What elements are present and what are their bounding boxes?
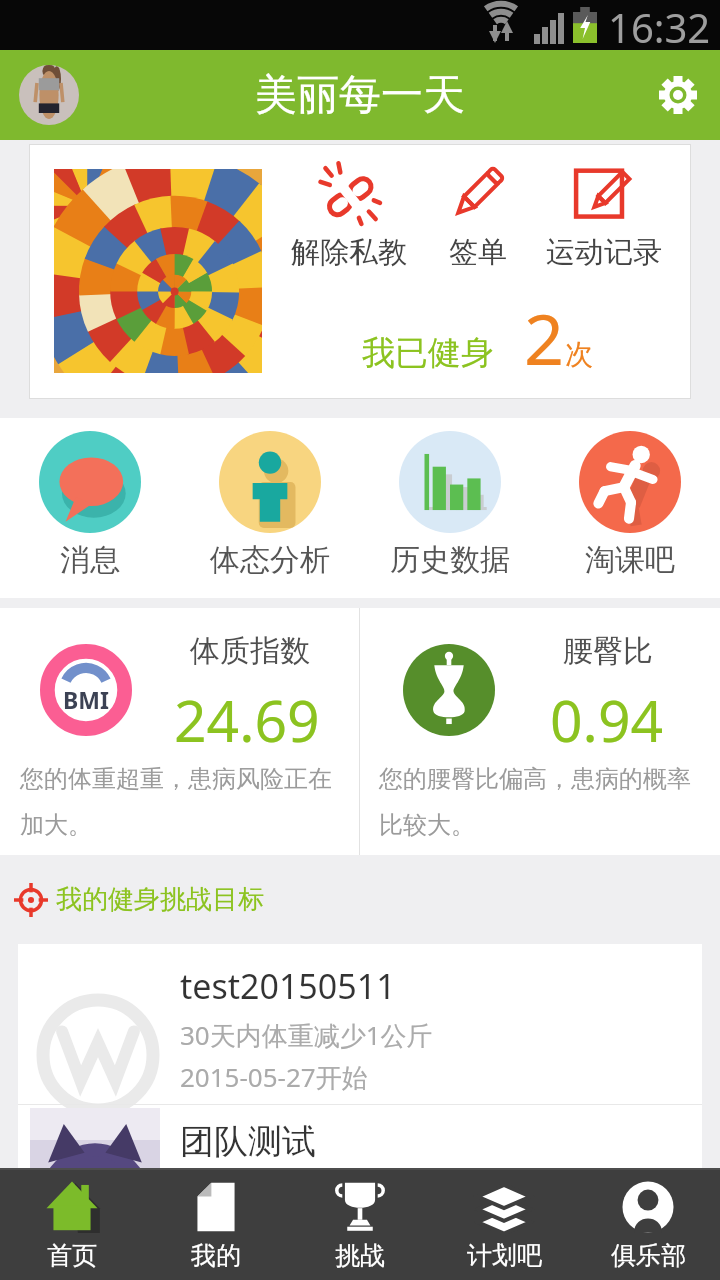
staticText: test20150511 (180, 963, 396, 1009)
button[interactable]: 解除私教 (285, 162, 413, 271)
staticText: 我的健身挑战目标 (56, 883, 264, 916)
staticText: 历史数据 (390, 541, 510, 579)
staticText: BMI (40, 684, 132, 715)
button[interactable]: 签单 (414, 162, 542, 271)
button[interactable]: 俱乐部 (576, 1170, 720, 1280)
button[interactable]: 我的 (144, 1170, 288, 1280)
staticText: 2 (524, 290, 565, 385)
button[interactable]: 运动记录 (540, 162, 668, 271)
button[interactable]: 体态分析 (180, 418, 360, 598)
button[interactable]: BMI (0, 608, 359, 855)
button[interactable]: test20150511 (18, 944, 702, 1104)
staticText: 24.69 (174, 681, 320, 759)
staticText: 我的 (191, 1240, 241, 1271)
staticText: 您的体重超重，患病风险正在 加大。 (20, 764, 332, 840)
button[interactable]: 挑战 (288, 1170, 432, 1280)
staticText: 计划吧 (467, 1240, 542, 1271)
staticText: 您的腰臀比偏高，患病的概率 比较大。 (379, 764, 691, 840)
staticText: 签单 (449, 234, 507, 271)
button[interactable] (656, 73, 700, 117)
staticText: 挑战 (335, 1240, 385, 1271)
button[interactable]: 淘课吧 (540, 418, 720, 598)
staticText: 16:32 (608, 0, 711, 50)
staticText: 体质指数 (190, 632, 310, 670)
button[interactable]: 消息 (0, 418, 180, 598)
staticText: 俱乐部 (611, 1240, 686, 1271)
staticText: 2015-05-27开始 (180, 1059, 368, 1095)
staticText: 腰臀比 (563, 632, 653, 670)
button[interactable] (19, 65, 79, 125)
staticText: 体态分析 (210, 541, 330, 579)
staticText: 淘课吧 (585, 541, 675, 579)
button[interactable]: 首页 (0, 1170, 144, 1280)
button[interactable]: 腰臀比 (360, 608, 720, 855)
staticText: 我已健身 (362, 332, 494, 374)
staticText: 消息 (60, 541, 120, 579)
staticText: 运动记录 (546, 234, 662, 271)
staticText: 次 (565, 337, 593, 372)
staticText: 0.94 (550, 681, 664, 759)
button[interactable]: 计划吧 (432, 1170, 576, 1280)
button[interactable]: 历史数据 (360, 418, 540, 598)
staticText: 首页 (47, 1240, 97, 1271)
button[interactable]: 团队测试 (18, 1105, 702, 1168)
staticText: 美丽每一天 (255, 69, 465, 122)
staticText: 团队测试 (180, 1120, 316, 1163)
staticText: 30天内体重减少1公斤 (180, 1017, 433, 1053)
staticText: 解除私教 (291, 234, 407, 271)
